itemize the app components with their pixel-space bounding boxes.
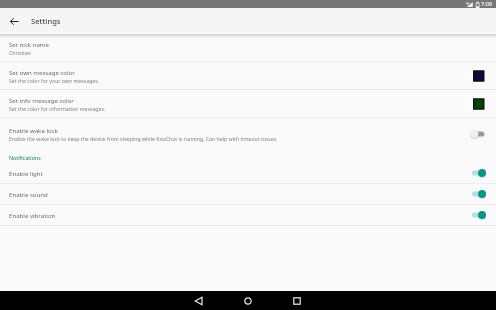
staticText: Enable light [9,169,43,177]
button[interactable]: Enable sound [0,184,496,204]
staticText: Settings [31,16,61,26]
staticText: Enable vibration [9,211,56,219]
button[interactable]: Set info message color [0,90,496,117]
staticText: Set nick name [9,40,49,48]
button[interactable]: Enable vibration [0,205,496,225]
staticText: Set the color for information messages. [9,105,106,112]
staticText: Set info message color [9,96,74,104]
button[interactable]: Home [233,291,263,310]
button[interactable]: Enable light [0,163,496,183]
staticText: Enable sound [9,190,48,198]
button[interactable]: Back [184,291,214,310]
staticText: Set the color for your own messages. [9,77,100,84]
staticText: Enable the wake lock to keep the device … [9,135,278,142]
button[interactable]: Set nick name [0,34,496,61]
button[interactable]: Recent apps [282,291,312,310]
staticText: Enable wake lock [9,126,58,134]
staticText: Christian [9,49,31,56]
staticText: Set own message color [9,68,75,76]
staticText: Notifications [9,154,41,161]
staticText: 7:09 [481,0,493,8]
button[interactable]: Set own message color [0,62,496,89]
button[interactable]: Enable wake lock [0,118,496,149]
button[interactable]: Back [0,8,28,34]
